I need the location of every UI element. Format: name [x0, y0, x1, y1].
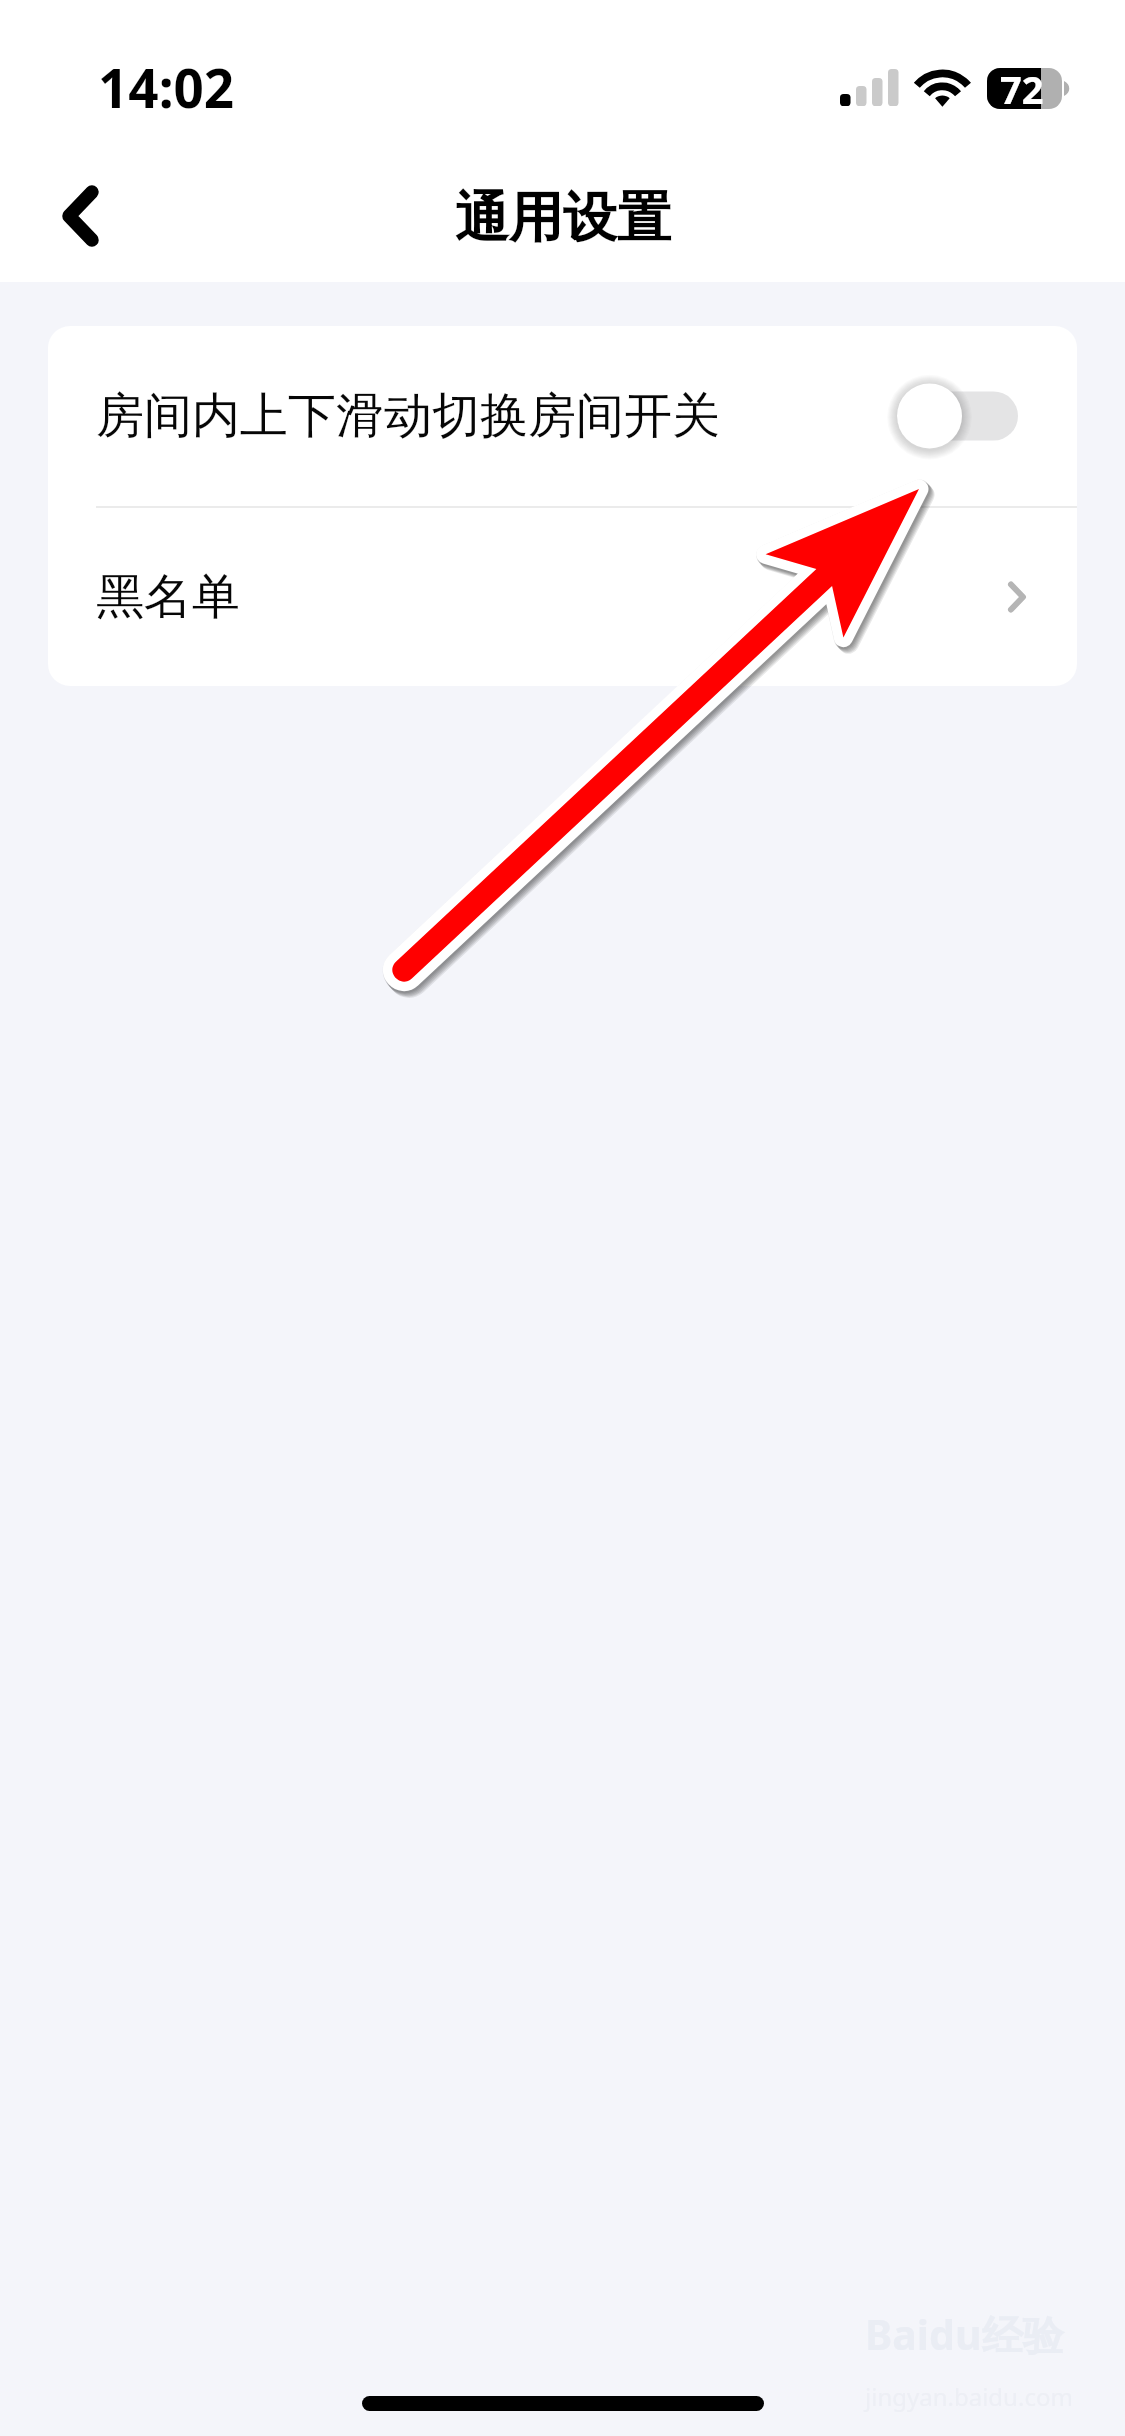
- button[interactable]: Back: [16, 161, 136, 281]
- staticText: 14:02: [98, 51, 235, 123]
- staticText: 72: [1000, 63, 1044, 115]
- staticText: 通用设置: [455, 184, 671, 252]
- button[interactable]: 房间内上下滑动切换房间开关: [48, 326, 1077, 506]
- button[interactable]: 黑名单: [48, 508, 1077, 686]
- button[interactable]: Toggle room swipe switch: [897, 381, 1018, 451]
- staticText: 黑名单: [96, 567, 240, 627]
- staticText: Baidu经验: [865, 2306, 1064, 2362]
- staticText: 房间内上下滑动切换房间开关: [96, 386, 720, 446]
